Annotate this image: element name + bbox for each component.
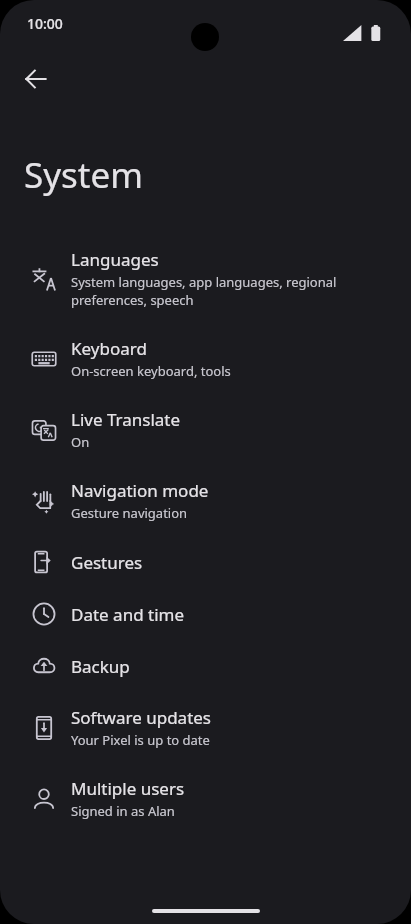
button[interactable]: Keyboard [0, 323, 411, 394]
staticText: System [24, 151, 143, 199]
button[interactable]: Back [12, 55, 60, 103]
button[interactable]: Live Translate [0, 394, 411, 465]
button[interactable]: Date and time [0, 588, 411, 640]
button[interactable]: Gestures [0, 536, 411, 588]
button[interactable]: Software updates [0, 692, 411, 763]
staticText: Software updates [71, 706, 212, 729]
staticText: Navigation mode [71, 479, 209, 502]
staticText: Backup [71, 655, 130, 678]
staticText: Your Pixel is up to date [71, 731, 210, 749]
staticText: Gestures [71, 551, 143, 574]
staticText: Date and time [71, 603, 185, 626]
staticText: Languages [71, 248, 159, 271]
button[interactable]: Navigation mode [0, 465, 411, 536]
staticText: Live Translate [71, 408, 181, 431]
staticText: Keyboard [71, 337, 147, 360]
staticText: Multiple users [71, 777, 185, 800]
staticText: On-screen keyboard, tools [71, 362, 231, 380]
button[interactable]: Languages [0, 234, 411, 323]
staticText: On [71, 433, 90, 451]
button[interactable]: Multiple users [0, 763, 411, 834]
staticText: Signed in as Alan [71, 802, 175, 820]
staticText: System languages, app languages, regiona… [71, 273, 391, 309]
button[interactable]: Backup [0, 640, 411, 692]
staticText: Gesture navigation [71, 504, 188, 522]
staticText: 10:00 [27, 14, 63, 33]
